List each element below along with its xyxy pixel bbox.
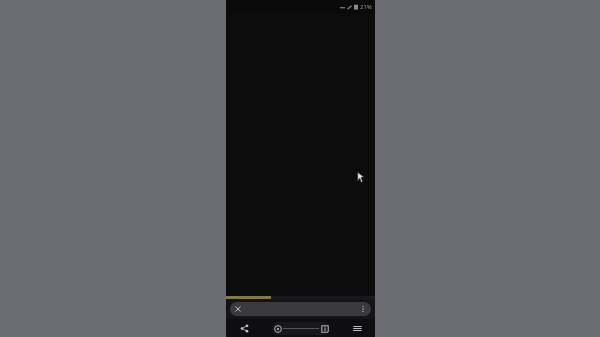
button[interactable]: Menu xyxy=(340,319,375,337)
button[interactable]: More options xyxy=(358,304,368,314)
button[interactable]: Share xyxy=(226,319,262,337)
button[interactable]: Zoom out xyxy=(272,323,283,334)
button[interactable]: Stop loading xyxy=(233,304,243,314)
button[interactable]: Stop loading xyxy=(230,302,371,316)
button[interactable]: Page info xyxy=(319,323,330,334)
staticText: 21% xyxy=(360,3,372,11)
